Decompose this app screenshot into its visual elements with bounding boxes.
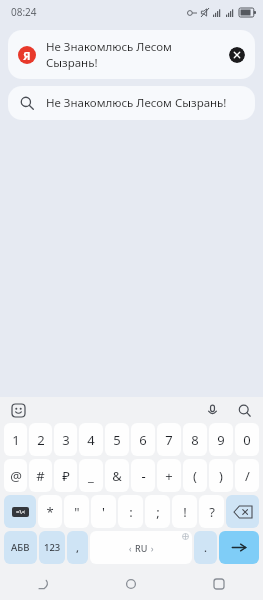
staticText: 1 [12, 431, 20, 449]
staticText: / [245, 467, 250, 485]
button[interactable]: + [157, 459, 181, 492]
staticText: 9 [217, 431, 225, 449]
button[interactable]: 123 [39, 531, 65, 564]
staticText: ; [156, 503, 160, 521]
staticText: . [204, 540, 207, 555]
staticText: АБВ [11, 541, 30, 554]
button[interactable]: Enter [219, 531, 259, 564]
staticText: 6 [139, 431, 147, 449]
staticText: 123 [44, 541, 61, 554]
staticText: ' [102, 503, 105, 521]
staticText: , [76, 540, 80, 555]
staticText: * [46, 503, 54, 521]
button[interactable]: ₽ [54, 459, 77, 492]
staticText: : [129, 503, 133, 521]
button[interactable]: 7 [157, 423, 181, 456]
button[interactable]: 6 [131, 423, 155, 456]
button[interactable]: Я [8, 30, 255, 79]
button[interactable]: 9 [209, 423, 233, 456]
staticText: + [165, 467, 173, 485]
button[interactable]: - [131, 459, 155, 492]
staticText: ( [193, 467, 197, 485]
button[interactable]: : [118, 495, 143, 528]
button[interactable]: 4 [79, 423, 103, 456]
button[interactable]: Back [0, 568, 87, 600]
staticText: ? [209, 503, 215, 521]
staticText: 8 [191, 431, 199, 449]
button[interactable]: / [235, 459, 259, 492]
button[interactable]: Space [90, 531, 192, 564]
staticText: 7 [165, 431, 173, 449]
button[interactable]: ? [199, 495, 224, 528]
button[interactable]: 0 [235, 423, 259, 456]
button[interactable]: 2 [29, 423, 52, 456]
staticText: ) [219, 467, 223, 485]
button[interactable]: * [38, 495, 62, 528]
staticText: _ [88, 467, 94, 485]
button[interactable]: Symbols [4, 495, 36, 528]
button[interactable]: Home [87, 568, 175, 600]
button[interactable]: " [64, 495, 89, 528]
button[interactable]: # [29, 459, 52, 492]
staticText: 4 [87, 431, 95, 449]
staticText: 5 [113, 431, 121, 449]
staticText: 0 [243, 431, 251, 449]
button[interactable]: 5 [105, 423, 129, 456]
button[interactable]: 3 [54, 423, 77, 456]
button[interactable]: 8 [183, 423, 207, 456]
staticText: RU [135, 542, 148, 554]
button[interactable]: & [105, 459, 129, 492]
staticText: › [151, 543, 154, 554]
button[interactable]: Emoji [9, 401, 27, 419]
button[interactable]: АБВ [4, 531, 37, 564]
button[interactable]: Search [235, 401, 253, 419]
staticText: 08:24 [11, 5, 37, 19]
button[interactable]: @ [4, 459, 27, 492]
button[interactable]: _ [79, 459, 103, 492]
staticText: Не Знакомлюсь Лесом Сызрань! [46, 39, 223, 70]
button[interactable]: ( [183, 459, 207, 492]
button[interactable]: , [67, 531, 88, 564]
staticText: 3 [62, 431, 70, 449]
staticText: Не Знакомлюсь Лесом Сызрань! [46, 95, 227, 111]
button[interactable]: ) [209, 459, 233, 492]
staticText: =\< [16, 508, 26, 516]
staticText: ‹ [129, 543, 132, 554]
staticText: # [36, 467, 45, 485]
button[interactable]: Remove suggestion [229, 47, 245, 63]
button[interactable]: Voice input [203, 401, 221, 419]
button[interactable]: 1 [4, 423, 27, 456]
button[interactable]: Recents [175, 568, 263, 600]
button[interactable]: ; [145, 495, 170, 528]
staticText: 2 [37, 431, 45, 449]
staticText: @ [10, 467, 22, 485]
staticText: ! [183, 503, 187, 521]
button[interactable]: Не Знакомлюсь Лесом Сызрань! [8, 86, 255, 120]
staticText: " [74, 503, 80, 521]
staticText: Я [23, 48, 31, 63]
button[interactable]: Backspace [226, 495, 259, 528]
button[interactable]: ' [91, 495, 116, 528]
staticText: - [141, 467, 146, 485]
button[interactable]: . [194, 531, 217, 564]
staticText: ₽ [62, 467, 70, 485]
button[interactable]: ! [172, 495, 197, 528]
staticText: & [112, 467, 122, 485]
